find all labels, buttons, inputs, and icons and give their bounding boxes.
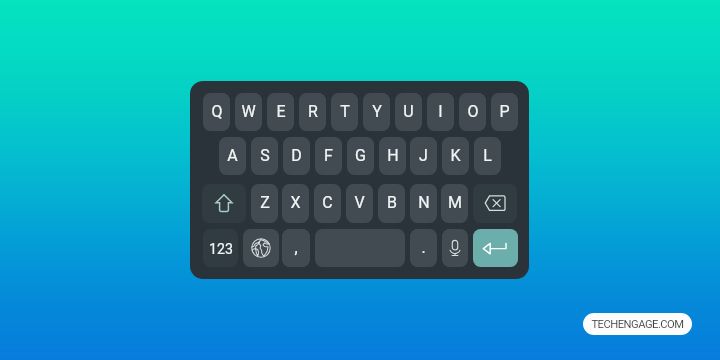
button[interactable]: G bbox=[347, 137, 374, 175]
button[interactable]: Y bbox=[363, 93, 390, 131]
button[interactable]: L bbox=[474, 137, 501, 175]
button[interactable]: B bbox=[378, 184, 405, 223]
button[interactable]: . bbox=[410, 229, 437, 267]
button[interactable]: Voice input bbox=[442, 229, 468, 267]
staticText: J bbox=[419, 146, 428, 165]
button[interactable]: H bbox=[379, 137, 406, 175]
button[interactable]: C bbox=[314, 184, 341, 223]
button[interactable]: P bbox=[491, 93, 518, 131]
button[interactable]: J bbox=[410, 137, 437, 175]
staticText: B bbox=[387, 193, 397, 212]
button[interactable]: Q bbox=[203, 93, 230, 131]
staticText: TECHENGAGE.COM bbox=[591, 318, 684, 331]
button[interactable]: V bbox=[346, 184, 373, 223]
button[interactable]: N bbox=[410, 184, 437, 223]
button[interactable]: , bbox=[282, 229, 310, 267]
staticText: E bbox=[276, 102, 286, 121]
staticText: , bbox=[294, 238, 298, 257]
staticText: O bbox=[467, 102, 479, 121]
button[interactable]: A bbox=[219, 137, 246, 175]
staticText: V bbox=[354, 193, 365, 212]
staticText: N bbox=[418, 193, 430, 212]
button[interactable]: E bbox=[267, 93, 294, 131]
staticText: G bbox=[355, 146, 366, 165]
staticText: I bbox=[438, 102, 443, 121]
button[interactable]: TECHENGAGE.COM bbox=[583, 313, 692, 335]
button[interactable]: S bbox=[251, 137, 278, 175]
staticText: X bbox=[290, 193, 301, 212]
button[interactable]: X bbox=[282, 184, 309, 223]
staticText: T bbox=[340, 102, 350, 121]
button[interactable]: O bbox=[459, 93, 486, 131]
staticText: 123 bbox=[209, 241, 233, 258]
staticText: U bbox=[403, 102, 414, 121]
staticText: K bbox=[450, 146, 461, 165]
staticText: A bbox=[227, 146, 238, 165]
button[interactable]: W bbox=[235, 93, 262, 131]
staticText: H bbox=[387, 146, 399, 165]
button[interactable]: K bbox=[442, 137, 469, 175]
staticText: Q bbox=[211, 102, 223, 121]
staticText: L bbox=[483, 146, 492, 165]
staticText: Z bbox=[260, 193, 270, 212]
staticText: S bbox=[260, 146, 270, 165]
button[interactable]: U bbox=[395, 93, 422, 131]
staticText: Y bbox=[372, 102, 382, 121]
button[interactable]: R bbox=[299, 93, 326, 131]
button[interactable]: F bbox=[315, 137, 342, 175]
staticText: F bbox=[324, 146, 333, 165]
button[interactable]: Enter bbox=[473, 229, 518, 267]
staticText: . bbox=[421, 238, 426, 257]
staticText: W bbox=[241, 102, 256, 121]
button[interactable]: Backspace bbox=[473, 184, 517, 223]
button[interactable]: Shift bbox=[202, 184, 246, 223]
staticText: D bbox=[291, 146, 302, 165]
staticText: R bbox=[308, 102, 318, 121]
button[interactable]: Switch keyboard language bbox=[243, 229, 279, 267]
button[interactable]: I bbox=[427, 93, 454, 131]
button[interactable]: D bbox=[283, 137, 310, 175]
staticText: P bbox=[499, 102, 510, 121]
staticText: M bbox=[448, 193, 462, 212]
button[interactable]: 123 bbox=[203, 229, 238, 267]
button[interactable]: T bbox=[331, 93, 358, 131]
button[interactable]: Z bbox=[251, 184, 278, 223]
staticText: C bbox=[322, 193, 333, 212]
button[interactable]: M bbox=[441, 184, 468, 223]
